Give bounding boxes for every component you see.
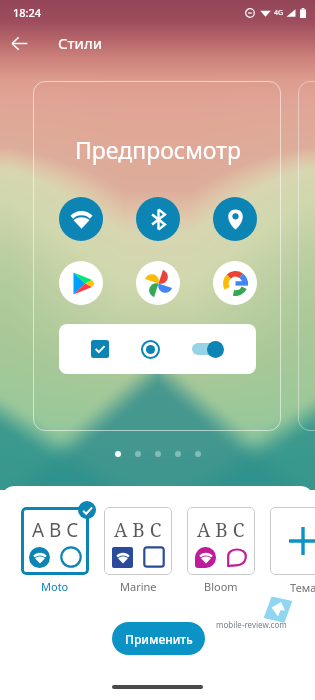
button[interactable]: Switch [192, 339, 224, 359]
staticText: Marine [120, 579, 157, 594]
staticText: Bloom [204, 579, 238, 594]
staticText: Применить [125, 631, 193, 647]
button[interactable]: Radio [141, 340, 160, 359]
staticText: A B C [114, 517, 162, 543]
staticText: Стили [58, 33, 103, 53]
staticText: mobile-review.com [216, 619, 287, 630]
button[interactable]: Back [0, 24, 38, 62]
staticText: 4G [274, 8, 284, 18]
button[interactable]: A B C [187, 507, 255, 575]
button[interactable]: Location [213, 197, 257, 241]
button[interactable]: Checkbox [91, 340, 109, 358]
staticText: Предпросмотр [75, 134, 241, 165]
staticText: A B C [32, 517, 79, 543]
staticText: 18:24 [13, 5, 42, 20]
button[interactable]: Wi-Fi [59, 197, 103, 241]
staticText: Moto [41, 579, 69, 594]
button[interactable]: Применить [112, 622, 205, 655]
button[interactable]: Google [213, 261, 257, 305]
staticText: Тема [290, 580, 315, 595]
button[interactable]: Bluetooth [136, 197, 180, 241]
staticText: A B C [197, 517, 245, 543]
button[interactable]: Add theme [270, 507, 315, 575]
button[interactable]: Play Store [59, 261, 103, 305]
button[interactable]: Photos [136, 261, 180, 305]
button[interactable]: A B C [21, 507, 89, 575]
button[interactable]: A B C [104, 507, 172, 575]
